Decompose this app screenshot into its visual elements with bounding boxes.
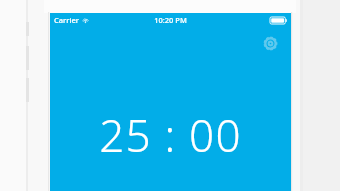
button[interactable]: Settings: [256, 29, 285, 58]
staticText: Carrier: [54, 15, 79, 25]
button[interactable]: 25 : 00: [50, 105, 291, 157]
staticText: 10:20 PM: [154, 15, 187, 25]
staticText: 25 : 00: [99, 105, 242, 157]
